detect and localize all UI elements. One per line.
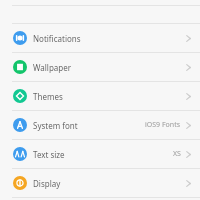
button[interactable]: Notifications: [0, 24, 200, 52]
button[interactable]: Display: [0, 169, 200, 197]
button[interactable]: System font: [0, 111, 200, 139]
staticText: Display: [33, 178, 61, 189]
button[interactable]: Text size: [0, 140, 200, 168]
button[interactable]: Wallpaper: [0, 53, 200, 81]
button[interactable]: Themes: [0, 82, 200, 110]
other: Open System font: [186, 121, 191, 130]
staticText: Text size: [33, 149, 65, 160]
other: Open Wallpaper: [186, 63, 191, 72]
other: Open Themes: [186, 92, 191, 101]
other: Open Notifications: [186, 34, 191, 43]
staticText: Wallpaper: [33, 62, 72, 73]
staticText: Notifications: [33, 33, 81, 44]
staticText: XS: [173, 149, 181, 159]
staticText: iOS9 Fonts: [145, 120, 181, 130]
staticText: Themes: [33, 91, 63, 102]
staticText: System font: [33, 120, 78, 131]
other: Open Display: [186, 179, 191, 188]
other: Open Text size: [186, 150, 191, 159]
